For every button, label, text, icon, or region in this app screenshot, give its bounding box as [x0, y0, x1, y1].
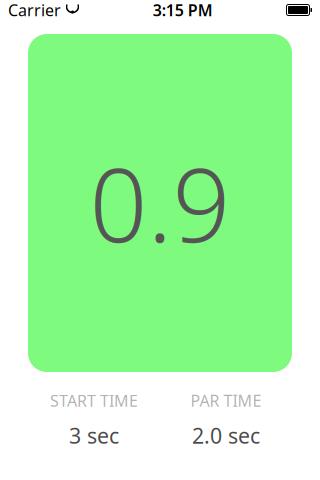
- staticText: START TIME: [50, 390, 138, 411]
- staticText: PAR TIME: [190, 390, 261, 411]
- staticText: Carrier: [8, 0, 61, 21]
- staticText: 3:15 PM: [153, 0, 213, 21]
- button[interactable]: PAR TIME: [160, 388, 292, 452]
- button[interactable]: START TIME: [28, 388, 160, 452]
- staticText: 0.9: [89, 136, 230, 270]
- staticText: 2.0 sec: [192, 421, 260, 449]
- staticText: 3 sec: [69, 421, 119, 449]
